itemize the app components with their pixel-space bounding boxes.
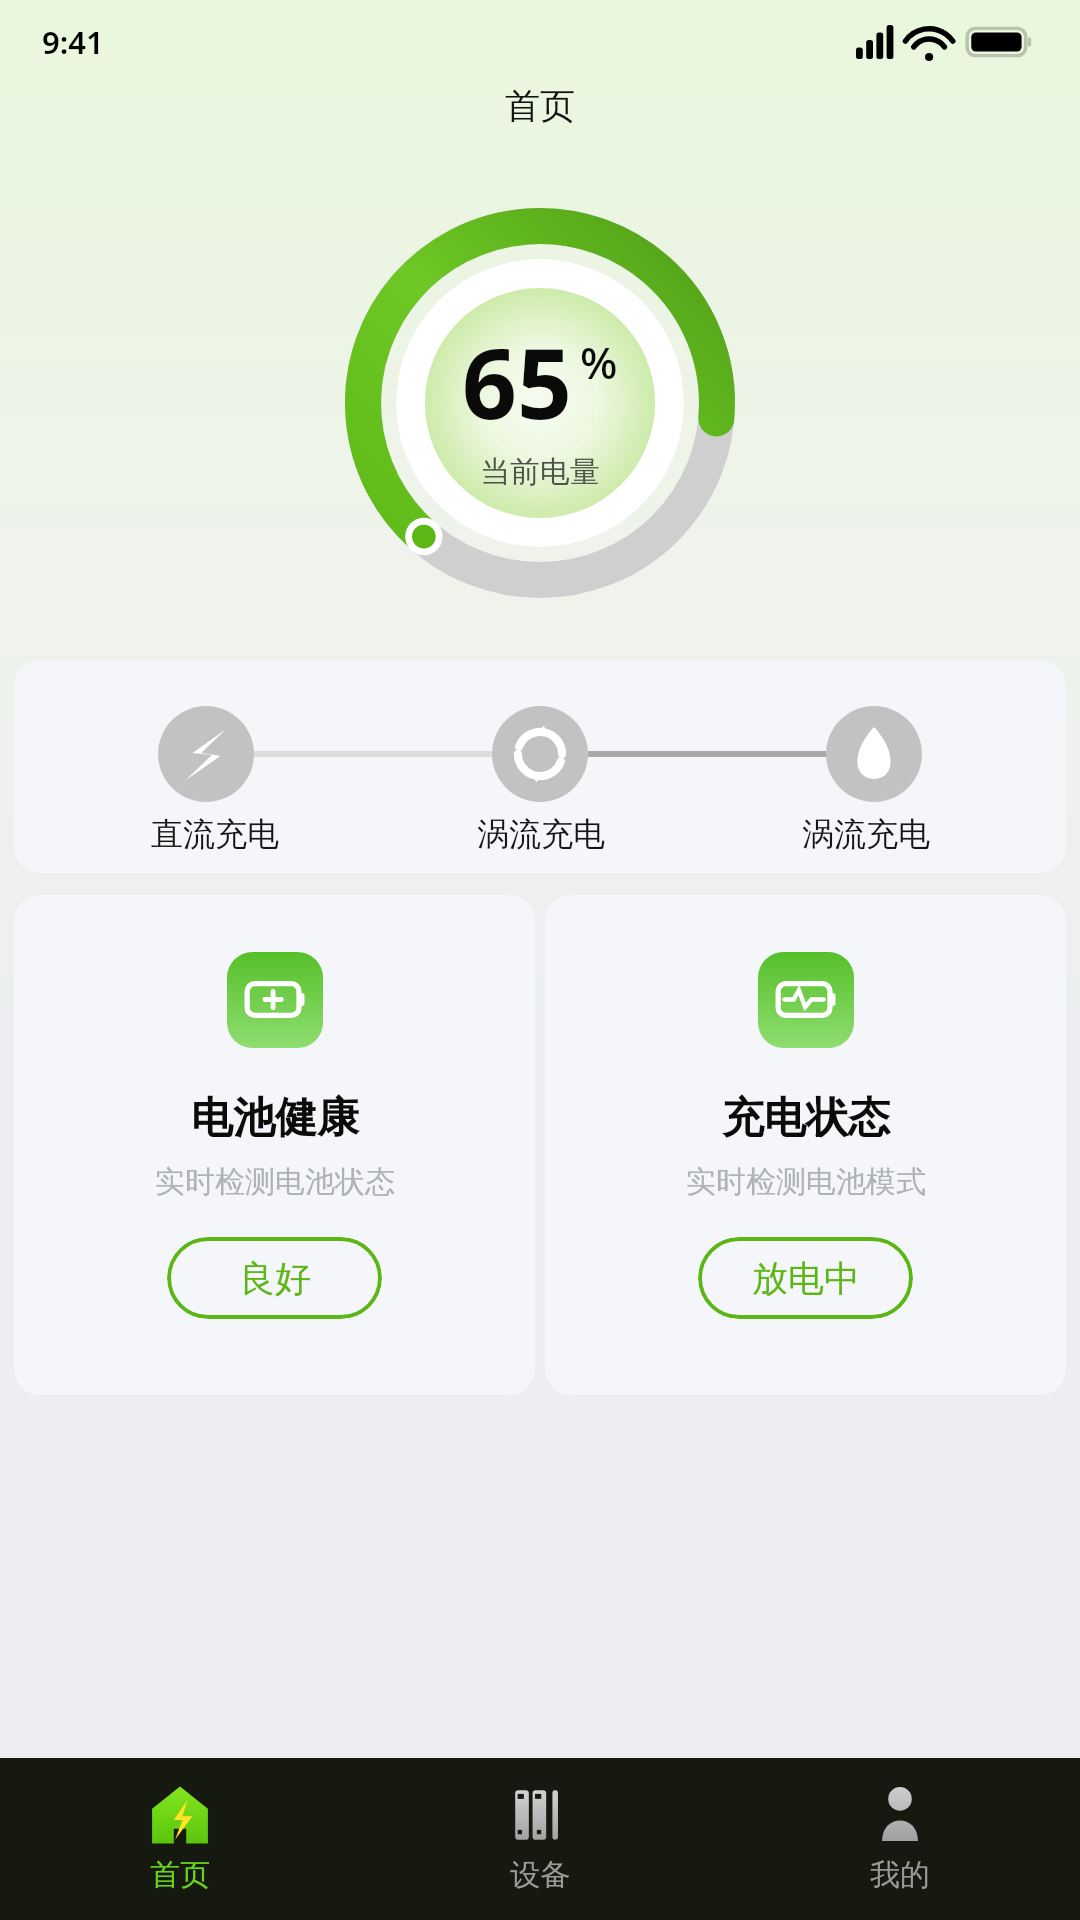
button[interactable]: 充电状态 bbox=[545, 895, 1066, 1395]
staticText: 放电中 bbox=[752, 1256, 860, 1301]
button[interactable]: 我的 bbox=[720, 1758, 1080, 1920]
staticText: 首页 bbox=[505, 84, 575, 128]
staticText: 设备 bbox=[510, 1856, 570, 1894]
button[interactable]: 良好 bbox=[167, 1237, 382, 1319]
staticText: 我的 bbox=[870, 1856, 930, 1894]
staticText: 9:41 bbox=[42, 21, 104, 63]
button[interactable]: 电池健康 bbox=[14, 895, 535, 1395]
staticText: 实时检测电池状态 bbox=[155, 1163, 395, 1201]
button[interactable]: 首页 bbox=[0, 1758, 360, 1920]
staticText: 65 bbox=[462, 316, 572, 447]
staticText: 良好 bbox=[239, 1256, 311, 1301]
staticText: 直流充电 bbox=[151, 814, 279, 854]
staticText: 电池健康 bbox=[191, 1092, 359, 1145]
button[interactable]: 设备 bbox=[360, 1758, 720, 1920]
staticText: % bbox=[580, 332, 618, 392]
staticText: 涡流充电 bbox=[802, 814, 930, 854]
staticText: 涡流充电 bbox=[477, 814, 605, 854]
staticText: 当前电量 bbox=[480, 453, 600, 491]
button[interactable]: 直流充电 bbox=[14, 660, 1066, 873]
staticText: 实时检测电池模式 bbox=[686, 1163, 926, 1201]
staticText: 充电状态 bbox=[722, 1092, 890, 1145]
button[interactable]: 放电中 bbox=[698, 1237, 913, 1319]
staticText: 首页 bbox=[150, 1856, 210, 1894]
